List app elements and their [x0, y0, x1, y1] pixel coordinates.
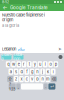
staticText: Nuestro cable filipinense i origen [2, 12, 45, 22]
staticText: a la gloria [2, 23, 19, 28]
staticText: k [47, 69, 49, 74]
staticText: u [39, 62, 41, 67]
staticText: a [10, 69, 12, 74]
staticText: w [12, 62, 15, 67]
staticText: h [36, 69, 38, 74]
staticText: y [34, 62, 36, 67]
staticText: ⌫ [51, 77, 56, 81]
button[interactable]: Back [2, 4, 8, 11]
staticText: سلام [17, 47, 24, 51]
button[interactable]: Send [58, 46, 62, 52]
staticText: q [7, 62, 9, 67]
staticText: , [18, 84, 19, 89]
staticText: g [31, 69, 33, 74]
staticText: t [29, 62, 30, 67]
staticText: f [26, 69, 27, 74]
staticText: b [36, 77, 38, 81]
staticText: r [23, 62, 25, 67]
staticText: ?123 [9, 82, 15, 91]
staticText: ⇧ [8, 77, 12, 81]
staticText: ← [2, 4, 7, 11]
staticText: p [55, 62, 57, 67]
staticText: s [15, 69, 17, 74]
staticText: o [49, 62, 51, 67]
staticText: Lebanon [14, 52, 23, 61]
staticText: . [45, 84, 46, 89]
staticText: ➤ [58, 46, 62, 52]
staticText: Libano [1, 52, 11, 61]
staticText: v [31, 77, 33, 81]
staticText: x [20, 77, 22, 81]
staticText: d [20, 69, 22, 74]
staticText: i [45, 62, 46, 67]
staticText: l [53, 69, 54, 74]
staticText: 8:52 [2, 0, 9, 4]
staticText: j [42, 69, 43, 74]
staticText: c [26, 77, 28, 81]
staticText: n [42, 77, 44, 81]
staticText: z [15, 77, 17, 81]
staticText: Lebanon [2, 47, 16, 51]
staticText: e [18, 62, 20, 67]
staticText: m [46, 77, 50, 81]
staticText: Google Translate [10, 5, 48, 10]
staticText: ↵ [50, 84, 54, 89]
